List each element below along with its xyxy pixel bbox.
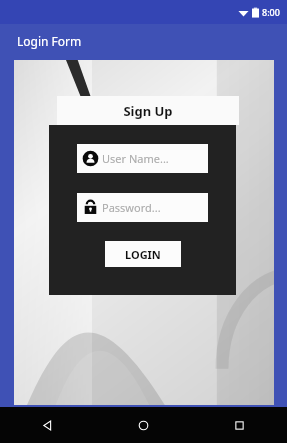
button[interactable]: Recents <box>191 407 287 443</box>
button[interactable]: LOGIN <box>105 241 181 267</box>
staticText: Password... <box>102 200 161 215</box>
button[interactable]: User Name... <box>77 144 208 173</box>
staticText: Sign Up <box>123 102 173 120</box>
button[interactable]: Password... <box>77 193 208 222</box>
staticText: LOGIN <box>125 247 161 262</box>
staticText: User Name... <box>102 151 169 166</box>
staticText: 8:00 <box>262 6 280 18</box>
button[interactable]: Back <box>0 407 95 443</box>
staticText: Login Form <box>17 33 82 49</box>
button[interactable]: Home <box>95 407 191 443</box>
